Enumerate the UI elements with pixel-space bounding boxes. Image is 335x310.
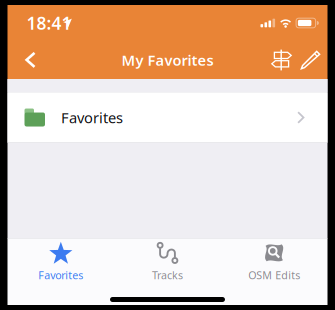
staticText: Favorites (61, 108, 123, 127)
button[interactable]: Edit (296, 41, 324, 79)
staticText: 18:41 (26, 11, 71, 34)
staticText: Tracks (152, 268, 183, 282)
button[interactable]: Waypoints (266, 41, 296, 79)
staticText: OSM Edits (248, 268, 300, 282)
button[interactable]: OSM Edits (221, 239, 327, 280)
staticText: Favorites (38, 268, 83, 282)
button[interactable]: Back (10, 41, 50, 79)
button[interactable]: Tracks (114, 239, 221, 280)
button[interactable]: Favorites (7, 92, 327, 142)
staticText: My Favorites (121, 50, 213, 70)
button[interactable]: Favorites (7, 239, 114, 280)
